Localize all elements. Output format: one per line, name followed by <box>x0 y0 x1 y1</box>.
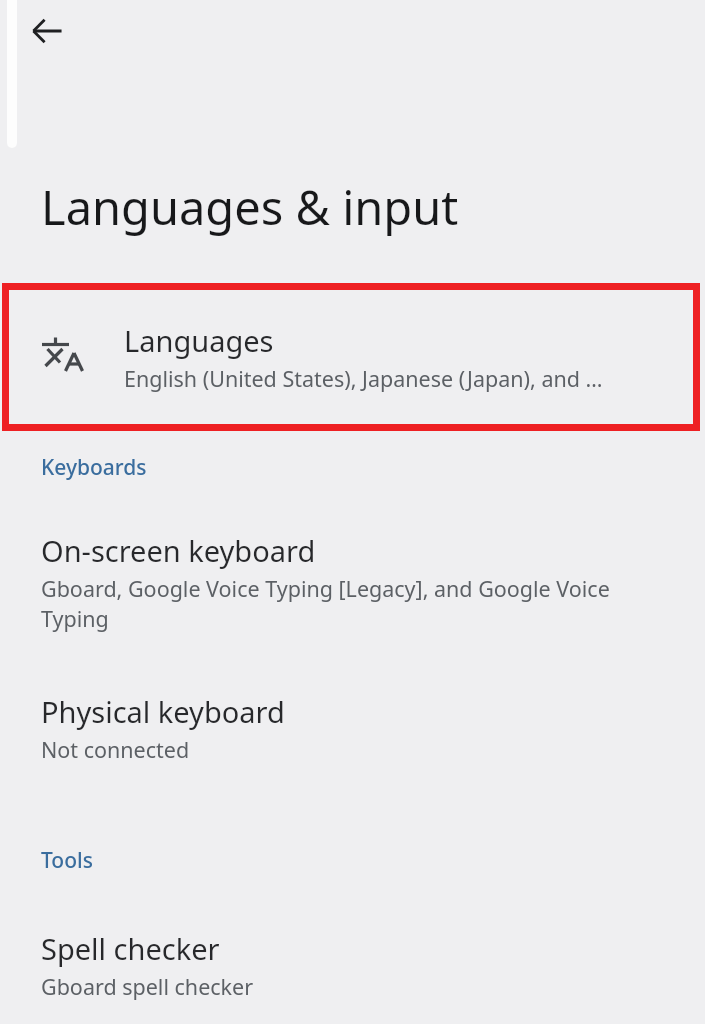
button[interactable]: Languages <box>2 283 700 431</box>
button[interactable]: Spell checker <box>0 927 705 1007</box>
staticText: Gboard spell checker <box>41 972 254 1001</box>
staticText: Not connected <box>41 735 190 764</box>
button[interactable]: Navigate up <box>21 5 73 57</box>
staticText: Tools <box>41 846 93 875</box>
staticText: English (United States), Japanese (Japan… <box>124 364 603 393</box>
staticText: Languages & input <box>41 175 459 239</box>
staticText: Gboard, Google Voice Typing [Legacy], an… <box>41 574 650 633</box>
staticText: Physical keyboard <box>41 692 285 731</box>
staticText: On-screen keyboard <box>41 531 316 570</box>
staticText: Keyboards <box>41 453 147 482</box>
button[interactable]: Physical keyboard <box>0 690 705 770</box>
button[interactable]: On-screen keyboard <box>0 529 705 639</box>
staticText: Languages <box>124 321 274 360</box>
staticText: Spell checker <box>41 929 220 968</box>
